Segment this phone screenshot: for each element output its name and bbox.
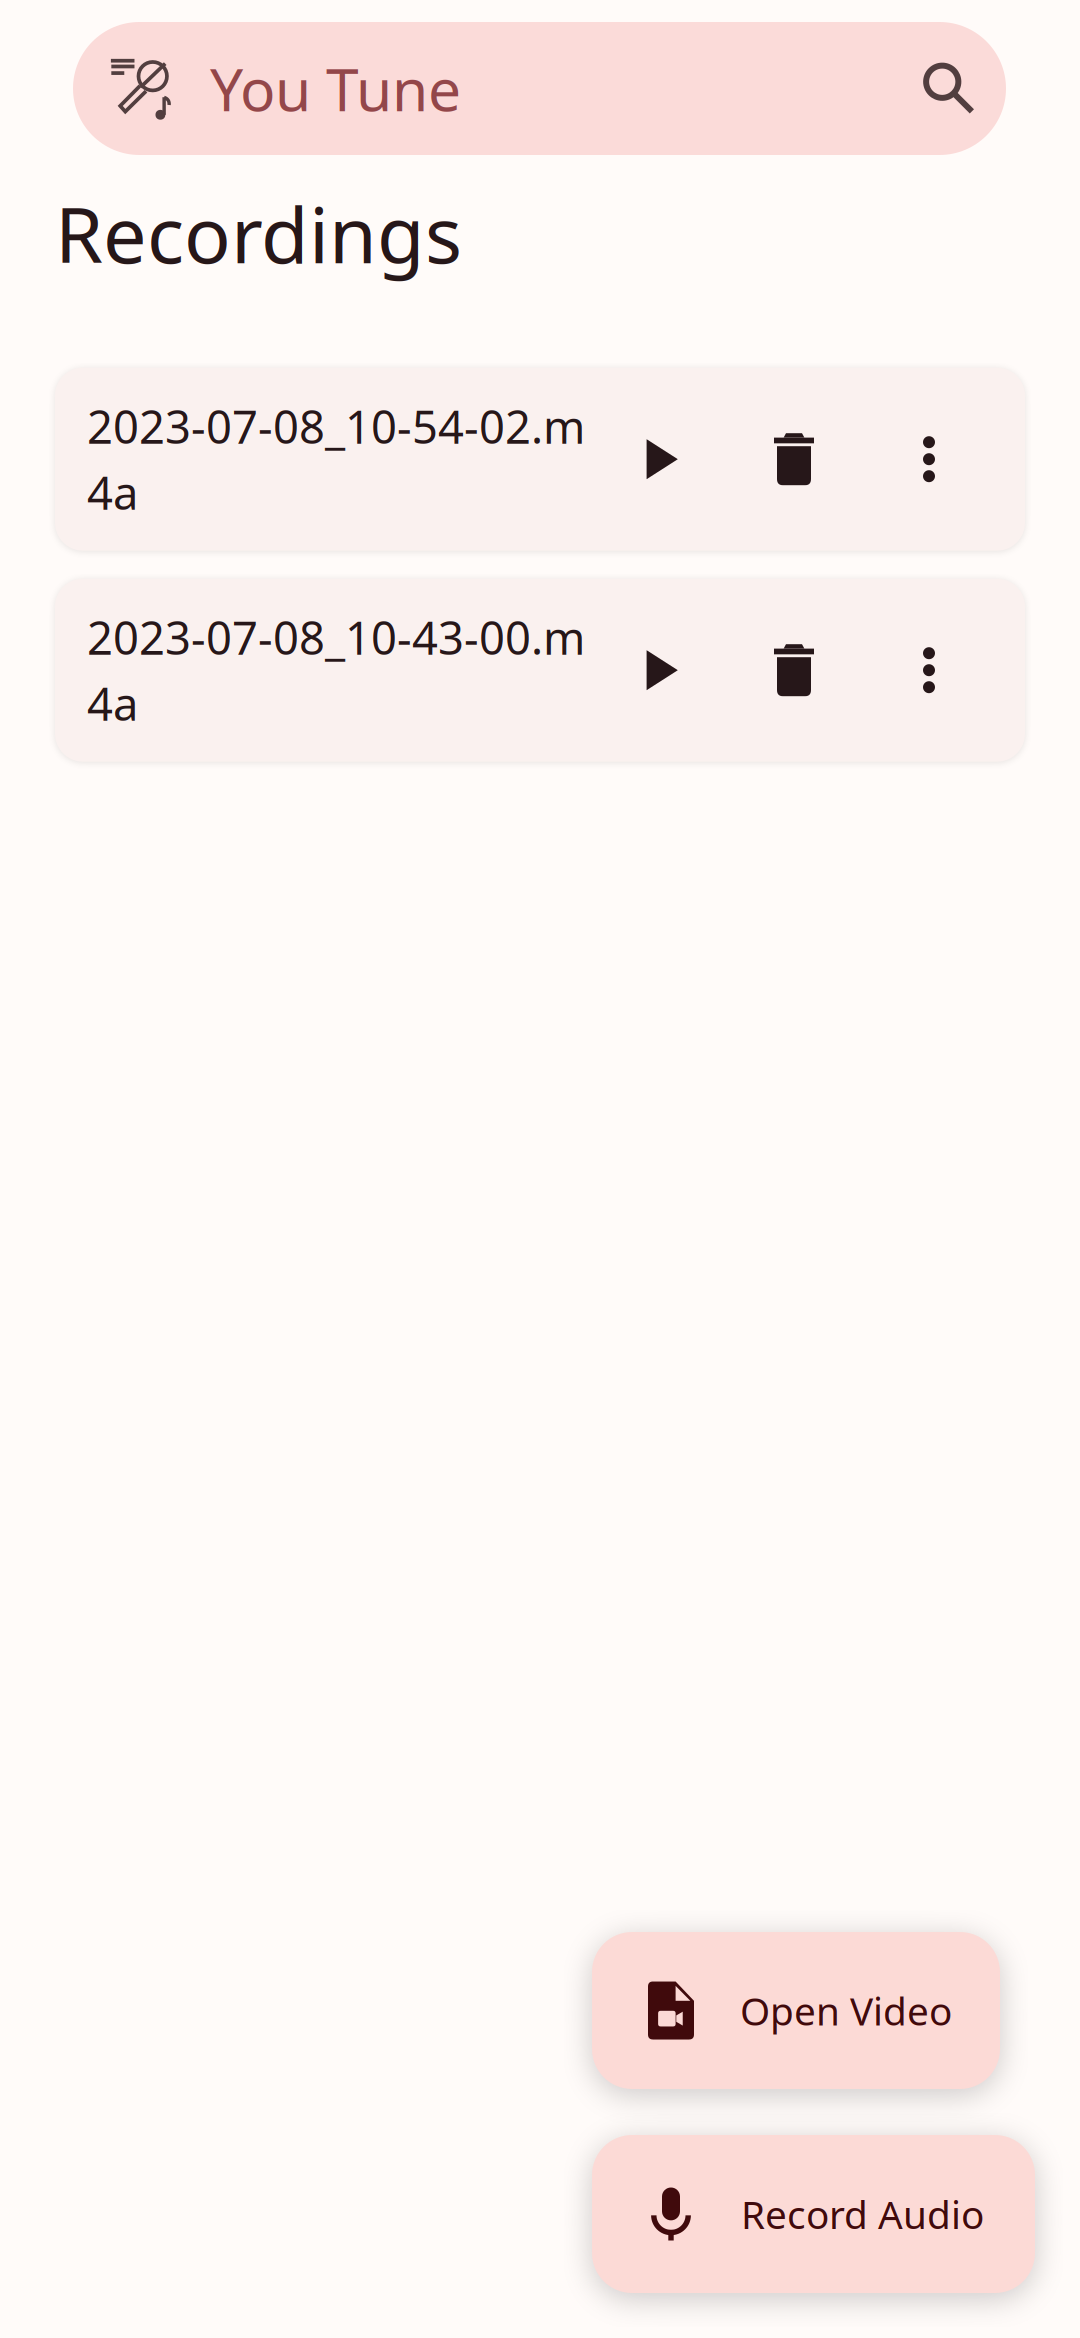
button[interactable]: More options [863,368,995,551]
staticText: 2023-07-08_10-54-02.m [87,396,585,456]
staticText: 4a [87,462,138,522]
button[interactable]: Search [923,22,975,155]
button[interactable]: Record Audio [592,2135,1035,2293]
staticText: Open Video [740,1985,952,2036]
button[interactable]: Delete [728,579,860,762]
button[interactable]: More options [863,579,995,762]
staticText: Record Audio [741,2188,984,2240]
staticText: You Tune [210,49,461,127]
staticText: Recordings [55,182,462,285]
button[interactable]: Play [596,579,728,762]
staticText: 4a [87,673,138,733]
button[interactable]: Delete [728,368,860,551]
button[interactable]: Play [596,368,728,551]
staticText: 2023-07-08_10-43-00.m [87,607,585,667]
button[interactable]: You Tune [73,22,1006,155]
button[interactable]: Open Video [592,1932,1000,2089]
